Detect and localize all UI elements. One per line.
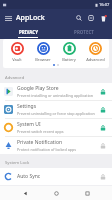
button[interactable]: Toggle lock for Private Notification [98, 141, 108, 151]
button[interactable]: PROTECT [56, 27, 112, 39]
staticText: PRIVACY [19, 29, 38, 35]
staticText: Prevent uninstalling or force stop appli… [17, 111, 95, 116]
staticText: System Lock [5, 160, 30, 166]
staticText: Private Notification [17, 139, 62, 146]
staticText: Vault [12, 57, 22, 62]
button[interactable]: Search [73, 12, 85, 24]
button[interactable]: Home [50, 187, 62, 199]
button[interactable]: Advanced [83, 42, 107, 62]
button[interactable]: Battery [57, 42, 81, 62]
button[interactable]: Recent apps [81, 187, 93, 199]
button[interactable]: Private Notification [0, 137, 112, 154]
staticText: Browser [35, 57, 51, 62]
button[interactable]: Apps [85, 12, 97, 24]
button[interactable]: Back [19, 187, 31, 199]
staticText: Google Play Store [17, 85, 59, 92]
button[interactable]: Browser [31, 42, 55, 62]
button[interactable]: Toggle lock for Auto Sync [98, 172, 108, 182]
staticText: Advanced [5, 75, 25, 81]
staticText: Auto Sync [17, 173, 41, 180]
button[interactable]: Notifications [97, 12, 109, 24]
button[interactable]: Settings [0, 101, 112, 118]
staticText: Protect notification of locked apps [17, 147, 77, 152]
staticText: PROTECT [74, 29, 94, 35]
staticText: 16:07 [99, 2, 110, 7]
button[interactable]: Toggle lock for System UI [98, 123, 108, 133]
staticText: Battery [62, 57, 76, 62]
staticText: Advanced [86, 57, 105, 62]
button[interactable]: Toggle lock for Settings [98, 105, 108, 115]
button[interactable]: Google Play Store [0, 83, 112, 100]
button[interactable]: Vault [5, 42, 29, 62]
button[interactable]: Menu [2, 12, 15, 25]
staticText: System UI [17, 121, 41, 128]
button[interactable]: PRIVACY [0, 27, 56, 39]
staticText: Prevent switch recent apps [17, 129, 64, 134]
staticText: AppLock [16, 13, 45, 23]
button[interactable]: Auto Sync [0, 168, 112, 185]
staticText: Settings [17, 103, 37, 110]
button[interactable]: System UI [0, 119, 112, 136]
button[interactable]: Toggle lock for Google Play Store [98, 87, 108, 97]
staticText: Prevent installing or uninstalling appli… [17, 93, 94, 98]
